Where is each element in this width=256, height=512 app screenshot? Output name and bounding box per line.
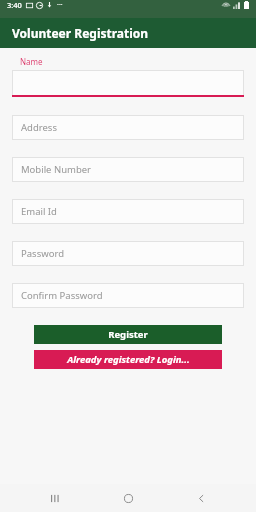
staticText: Email Id xyxy=(21,205,57,218)
staticText: Register xyxy=(108,328,148,341)
button[interactable]: Password xyxy=(13,242,243,265)
staticText: Name xyxy=(20,56,43,67)
button[interactable]: Back xyxy=(183,484,219,512)
button[interactable]: Recent apps xyxy=(37,484,73,512)
button[interactable]: Register xyxy=(34,325,222,344)
staticText: 3:40 xyxy=(7,0,22,10)
staticText: Mobile Number xyxy=(21,163,92,176)
staticText: Already registered? Login... xyxy=(67,353,190,366)
staticText: Confirm Password xyxy=(21,289,103,302)
button[interactable]: Confirm Password xyxy=(13,284,243,307)
button[interactable]: Mobile Number xyxy=(13,158,243,181)
staticText: Password xyxy=(21,247,64,260)
staticText: ··· xyxy=(57,0,63,10)
button[interactable]: Email Id xyxy=(13,200,243,223)
button[interactable]: Already registered? Login... xyxy=(34,350,222,369)
button[interactable]: Address xyxy=(13,116,243,139)
staticText: Address xyxy=(21,121,57,134)
button[interactable]: Home xyxy=(110,484,146,512)
staticText: Volunteer Registration xyxy=(12,25,149,41)
